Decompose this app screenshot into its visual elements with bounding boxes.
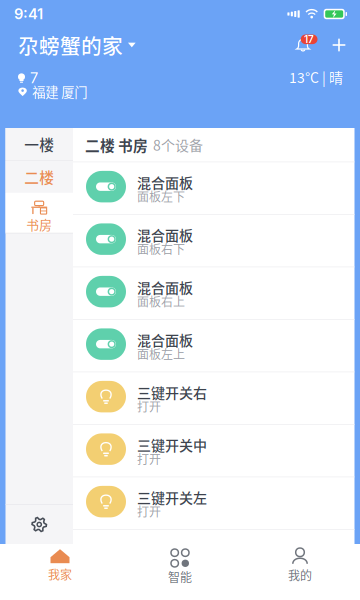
staticText: 尕螃蟹的家 — [18, 30, 123, 60]
button[interactable]: 一楼 — [5, 128, 73, 160]
button[interactable]: 智能 — [120, 544, 240, 600]
staticText: 三键开关中 — [137, 434, 207, 455]
staticText: 9:41 — [14, 5, 43, 23]
staticText: 一楼 — [24, 133, 54, 155]
staticText: 打开 — [137, 502, 161, 520]
staticText: 17 — [304, 33, 314, 45]
staticText: 打开 — [137, 450, 161, 467]
button[interactable]: Settings — [5, 505, 73, 544]
button[interactable]: 我的 — [240, 544, 360, 600]
staticText: 混合面板 — [137, 172, 193, 192]
staticText: 混合面板 — [137, 277, 193, 297]
staticText: 面板左上 — [137, 345, 185, 362]
button[interactable]: 尕螃蟹的家 — [0, 28, 146, 62]
button[interactable]: 三键开关右 — [73, 372, 354, 425]
staticText: 三键开关左 — [137, 487, 207, 507]
staticText: 面板右上 — [137, 292, 185, 310]
staticText: 我家 — [48, 565, 72, 583]
button[interactable]: Notifications — [288, 28, 318, 62]
staticText: 混合面板 — [137, 329, 193, 350]
staticText: 13°C | 晴 — [289, 67, 343, 87]
button[interactable]: 混合面板 — [73, 215, 354, 267]
staticText: 书房 — [26, 215, 52, 233]
button[interactable]: Add — [318, 28, 360, 62]
staticText: 混合面板 — [137, 224, 193, 245]
staticText: 面板右下 — [137, 240, 185, 257]
button[interactable]: 我家 — [0, 544, 120, 600]
staticText: 我的 — [288, 566, 312, 584]
button[interactable]: 二楼 — [5, 161, 73, 193]
staticText: 智能 — [168, 568, 192, 585]
staticText: 三键开关右 — [137, 382, 207, 402]
button[interactable]: 混合面板 — [73, 267, 354, 320]
staticText: 二楼 — [24, 166, 54, 187]
staticText: 7 — [30, 69, 38, 87]
button[interactable]: 三键开关左 — [73, 477, 354, 530]
staticText: 福建 厦门 — [32, 82, 87, 101]
staticText: 面板左下 — [137, 187, 185, 205]
button[interactable]: 三键开关中 — [73, 425, 354, 477]
staticText: 8个设备 — [153, 135, 203, 155]
staticText: 打开 — [137, 397, 161, 415]
button[interactable]: 混合面板 — [73, 162, 354, 215]
button[interactable]: 书房 — [5, 193, 73, 233]
button[interactable]: 混合面板 — [73, 320, 354, 372]
staticText: 二楼 书房 — [85, 134, 148, 155]
